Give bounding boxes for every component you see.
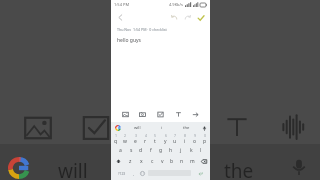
button[interactable]: Google search <box>111 122 125 134</box>
button[interactable]: Undo <box>169 12 180 23</box>
button[interactable]: v <box>157 156 167 167</box>
staticText: hello guys <box>117 37 141 44</box>
button[interactable]: 2 <box>120 134 130 145</box>
staticText: , <box>133 171 135 176</box>
staticText: g <box>159 147 163 154</box>
staticText: v <box>161 158 164 165</box>
button[interactable]: Redo <box>182 12 193 23</box>
staticText: t <box>154 138 156 145</box>
button[interactable]: Back <box>115 12 126 23</box>
button[interactable]: Checklist <box>80 112 112 144</box>
staticText: u <box>173 138 177 145</box>
staticText: Thu Nov 1:54 PM · 0 checklist <box>117 27 167 32</box>
button[interactable]: Send <box>189 108 202 121</box>
staticText: 8 <box>184 134 186 138</box>
staticText: 6 <box>165 134 167 138</box>
button[interactable]: f <box>146 145 156 156</box>
staticText: 3 <box>135 134 137 138</box>
staticText: 2 <box>124 134 126 138</box>
button[interactable]: z <box>125 156 136 167</box>
button[interactable]: Audio recording <box>278 112 308 142</box>
staticText: 1 <box>115 134 117 138</box>
button[interactable]: the <box>174 122 198 134</box>
button[interactable]: 7 <box>170 134 180 145</box>
button[interactable]: h <box>166 145 176 156</box>
staticText: will <box>58 158 88 180</box>
button[interactable]: k <box>186 145 196 156</box>
button[interactable]: Insert image <box>22 112 54 144</box>
button[interactable]: 3 <box>130 134 140 145</box>
staticText: 5 <box>154 134 156 138</box>
button[interactable]: Enter <box>192 168 208 178</box>
staticText: m <box>190 158 195 165</box>
button[interactable]: Emoji <box>138 168 147 178</box>
button[interactable]: Text formatting <box>172 108 185 121</box>
button[interactable]: 0 <box>200 134 210 145</box>
button[interactable]: c <box>147 156 157 167</box>
button[interactable]: the <box>224 158 254 180</box>
button[interactable]: 4 <box>140 134 150 145</box>
staticText: 0 <box>204 134 206 138</box>
button[interactable]: g <box>156 145 166 156</box>
staticText: p <box>203 138 207 145</box>
button[interactable]: Shift <box>111 156 125 167</box>
staticText: 4 <box>145 134 147 138</box>
staticText: o <box>193 138 197 145</box>
button[interactable]: Backspace <box>197 156 210 167</box>
button[interactable]: x <box>136 156 147 167</box>
button[interactable]: b <box>167 156 177 167</box>
button[interactable]: Google search <box>8 157 30 179</box>
staticText: q <box>114 138 118 145</box>
button[interactable]: s <box>126 145 136 156</box>
staticText: 4.9Kb/s <box>169 2 183 7</box>
button[interactable]: i <box>150 122 174 134</box>
staticText: i <box>161 125 163 131</box>
staticText: w <box>123 138 127 145</box>
staticText: a <box>119 147 122 154</box>
button[interactable]: Voice input <box>198 122 210 134</box>
button[interactable]: d <box>136 145 146 156</box>
staticText: f <box>150 147 152 154</box>
staticText: l <box>200 147 202 154</box>
button[interactable]: m <box>187 156 197 167</box>
staticText: 9 <box>194 134 196 138</box>
button[interactable]: , <box>130 168 138 178</box>
staticText: x <box>140 158 143 165</box>
button[interactable]: Take photo <box>136 108 149 121</box>
button[interactable]: 8 <box>180 134 190 145</box>
staticText: k <box>190 147 193 154</box>
staticText: h <box>169 147 173 154</box>
button[interactable]: 9 <box>190 134 200 145</box>
button[interactable]: Insert image <box>119 108 132 121</box>
button[interactable]: Formatting <box>222 112 252 142</box>
button[interactable]: ?123 <box>113 168 130 178</box>
staticText: n <box>180 158 184 165</box>
staticText: y <box>164 138 167 145</box>
button[interactable]: will <box>125 122 150 134</box>
button[interactable]: will <box>58 158 88 180</box>
staticText: 1:54 PM <box>114 2 130 7</box>
staticText: 7 <box>174 134 176 138</box>
button[interactable]: a <box>115 145 126 156</box>
staticText: ?123 <box>118 171 126 176</box>
button[interactable]: l <box>196 145 206 156</box>
staticText: j <box>180 147 182 154</box>
button[interactable]: Done <box>195 12 206 23</box>
staticText: i <box>184 138 186 145</box>
button[interactable]: j <box>176 145 186 156</box>
button[interactable]: n <box>177 156 187 167</box>
button[interactable]: 6 <box>160 134 170 145</box>
button[interactable]: Voice input <box>290 158 308 176</box>
staticText: d <box>139 147 143 154</box>
button[interactable]: 5 <box>150 134 160 145</box>
staticText: the <box>224 158 254 180</box>
staticText: the <box>183 125 190 131</box>
staticText: z <box>129 158 132 165</box>
button[interactable]: 1 <box>111 134 120 145</box>
staticText: r <box>144 138 147 145</box>
staticText: will <box>134 125 141 131</box>
staticText: e <box>134 138 137 145</box>
button[interactable]: Checklist <box>154 108 167 121</box>
staticText: c <box>151 158 154 165</box>
